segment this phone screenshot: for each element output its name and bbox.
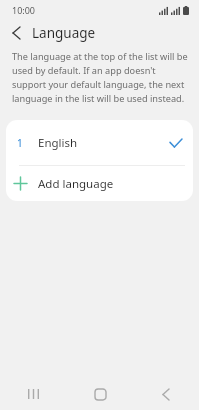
button[interactable]: Back: [0, 20, 32, 46]
button[interactable]: Recents: [0, 378, 67, 410]
other: Selected: [163, 130, 189, 156]
staticText: Add language: [38, 176, 114, 192]
staticText: English: [38, 135, 78, 151]
button[interactable]: Home: [67, 378, 133, 410]
staticText: 10:00: [12, 4, 36, 16]
staticText: The language at the top of the list will…: [12, 50, 188, 105]
staticText: 1: [17, 136, 23, 150]
button[interactable]: Add language: [6, 166, 193, 201]
staticText: Language: [32, 24, 96, 42]
button[interactable]: Back: [133, 378, 199, 410]
button[interactable]: 1: [6, 120, 193, 165]
